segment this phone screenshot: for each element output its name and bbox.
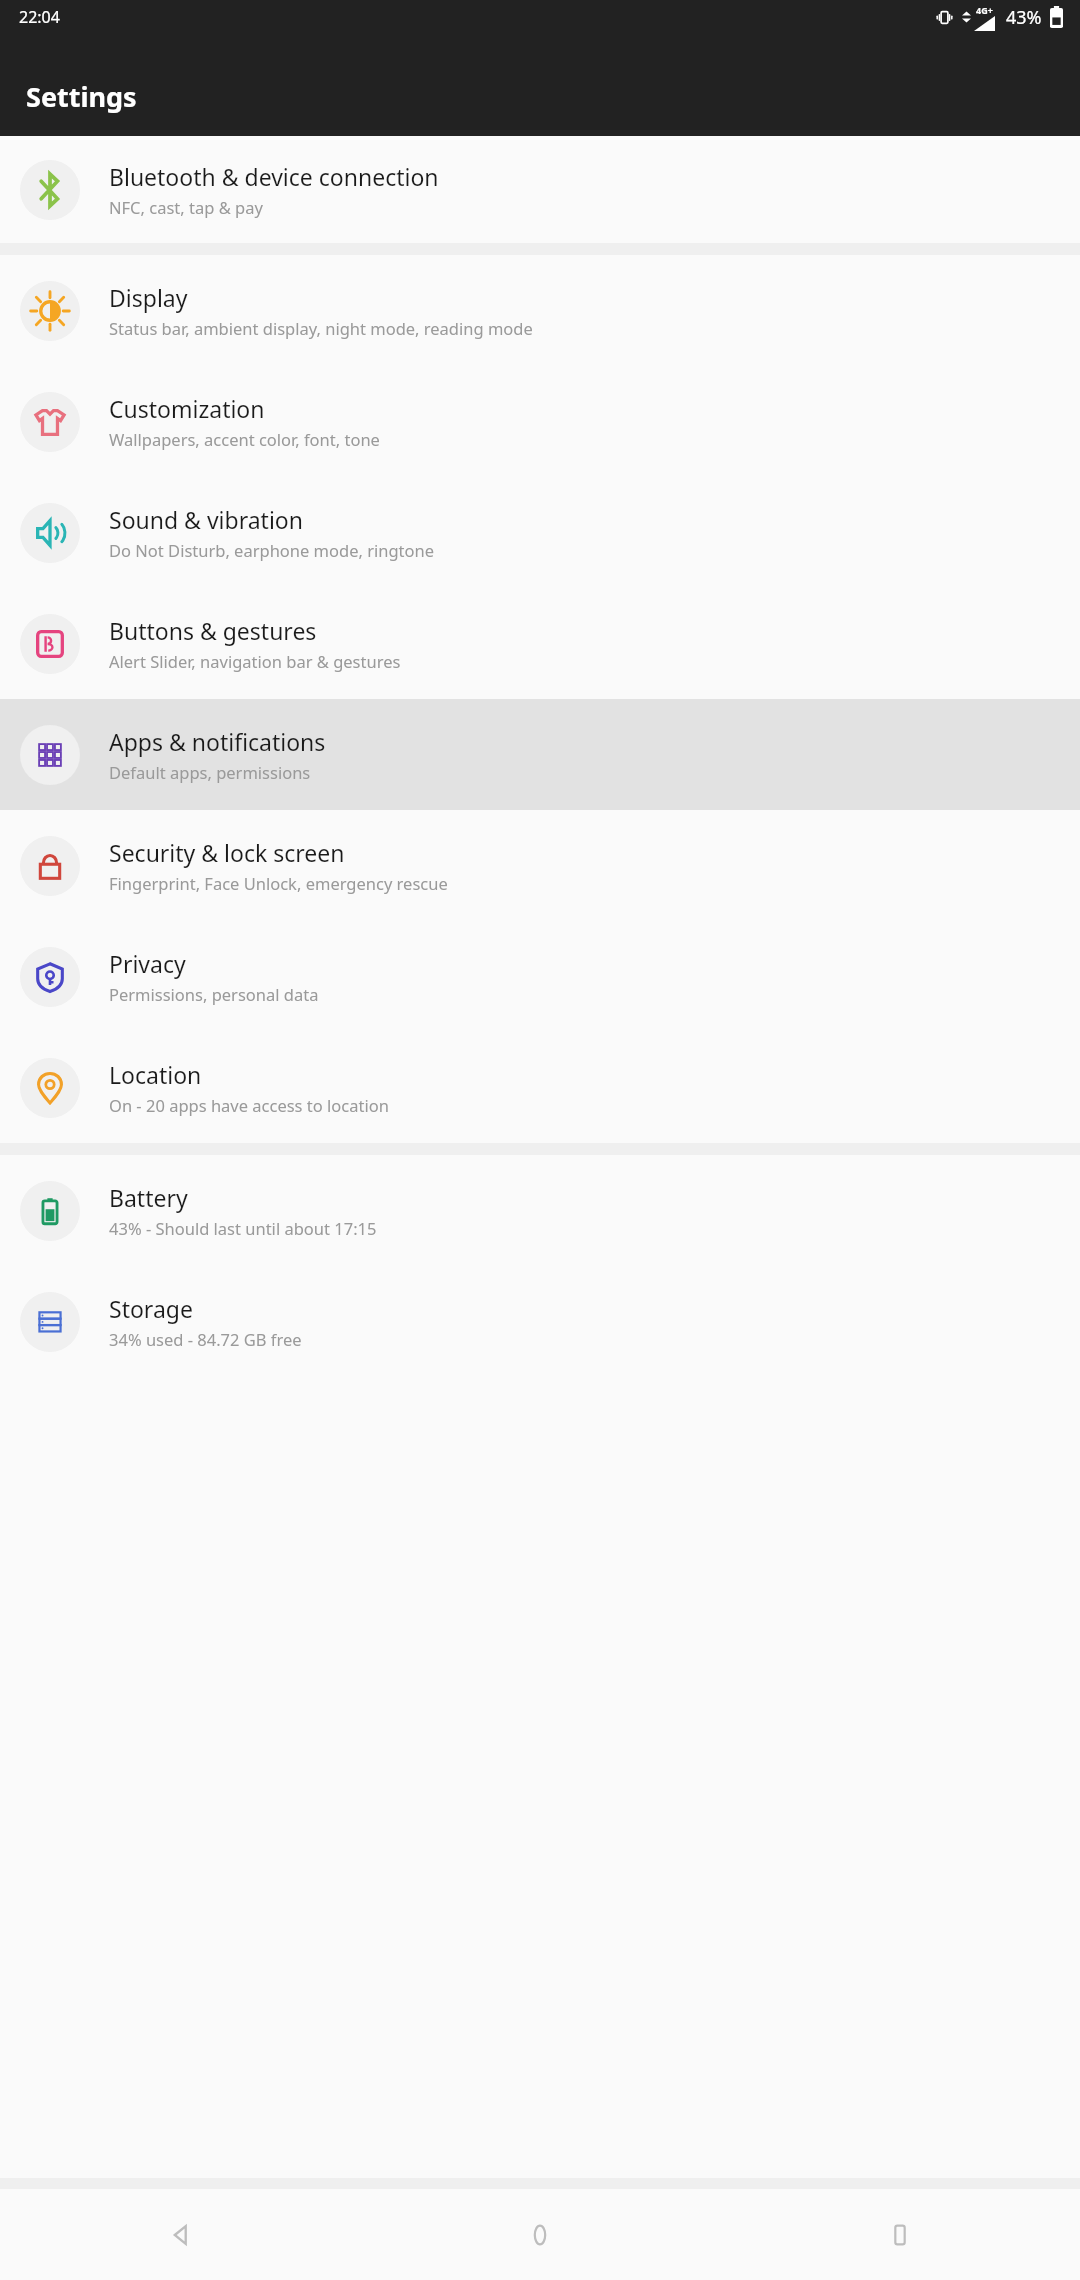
button[interactable]: Buttons & gestures — [0, 588, 1080, 699]
staticText: Default apps, permissions — [109, 761, 311, 783]
staticText: 4G+ — [976, 4, 993, 16]
staticText: Battery — [109, 1182, 188, 1213]
button[interactable]: Customization — [0, 366, 1080, 477]
staticText: Bluetooth & device connection — [109, 161, 439, 192]
staticText: Settings — [26, 78, 137, 115]
staticText: Wallpapers, accent color, font, tone — [109, 428, 380, 450]
button[interactable]: Sound & vibration — [0, 477, 1080, 588]
staticText: Security & lock screen — [109, 837, 345, 868]
staticText: Customization — [109, 393, 265, 424]
button[interactable]: Security & lock screen — [0, 810, 1080, 921]
staticText: 34% used - 84.72 GB free — [109, 1328, 302, 1350]
staticText: NFC, cast, tap & pay — [109, 196, 263, 218]
button[interactable]: Battery — [0, 1155, 1080, 1266]
button[interactable]: Privacy — [0, 921, 1080, 1032]
staticText: Display — [109, 282, 188, 313]
staticText: Alert Slider, navigation bar & gestures — [109, 650, 401, 672]
staticText: 22:04 — [19, 6, 60, 28]
staticText: Do Not Disturb, earphone mode, ringtone — [109, 539, 435, 561]
button[interactable]: Location — [0, 1032, 1080, 1143]
button[interactable]: Storage — [0, 1266, 1080, 1377]
staticText: Sound & vibration — [109, 504, 303, 535]
button[interactable]: Home — [360, 2189, 720, 2280]
button[interactable]: Bluetooth & device connection — [0, 136, 1080, 243]
staticText: Permissions, personal data — [109, 983, 319, 1005]
staticText: Location — [109, 1059, 202, 1090]
button[interactable]: Back — [0, 2189, 360, 2280]
staticText: On - 20 apps have access to location — [109, 1094, 389, 1116]
staticText: Apps & notifications — [109, 726, 326, 757]
staticText: 43% - Should last until about 17:15 — [109, 1217, 377, 1239]
staticText: Privacy — [109, 948, 186, 979]
button[interactable]: Apps & notifications — [0, 699, 1080, 810]
staticText: Status bar, ambient display, night mode,… — [109, 317, 533, 339]
staticText: Storage — [109, 1293, 193, 1324]
button[interactable]: Recents — [720, 2189, 1080, 2280]
staticText: Fingerprint, Face Unlock, emergency resc… — [109, 872, 448, 894]
staticText: 43% — [1006, 5, 1042, 30]
staticText: Buttons & gestures — [109, 615, 317, 646]
button[interactable]: Display — [0, 255, 1080, 366]
